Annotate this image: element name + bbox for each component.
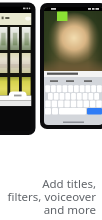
staticText: Add titles, filters, voiceover and more	[0, 176, 96, 217]
